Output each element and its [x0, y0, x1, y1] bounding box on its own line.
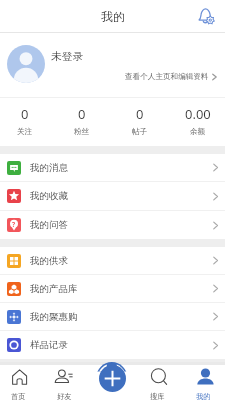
button[interactable]: Notification settings	[197, 7, 215, 25]
button[interactable]: 首页	[0, 365, 41, 400]
staticText: 0.00	[185, 105, 211, 123]
staticText: 首页	[11, 392, 26, 400]
staticText: 好友	[57, 392, 72, 400]
button[interactable]: 0	[111, 98, 169, 146]
button[interactable]: 我的聚惠购	[0, 303, 225, 330]
staticText: 样品记录	[30, 339, 68, 351]
staticText: 帖子	[132, 127, 148, 137]
staticText: 粉丝	[74, 127, 90, 137]
staticText: 我的	[196, 392, 211, 400]
button[interactable]: 我的产品库	[0, 275, 225, 302]
staticText: 我的聚惠购	[30, 311, 78, 323]
staticText: 我的产品库	[30, 283, 78, 295]
button[interactable]: 我的供求	[0, 247, 225, 274]
staticText: ?	[12, 220, 16, 229]
button[interactable]: 未登录	[0, 33, 225, 97]
button[interactable]: Add	[99, 365, 126, 392]
staticText: 关注	[17, 127, 33, 137]
staticText: 0	[78, 105, 86, 123]
staticText: 我的问答	[30, 219, 68, 231]
button[interactable]: 搜库	[135, 365, 180, 400]
staticText: 搜库	[150, 392, 165, 400]
button[interactable]: ?	[0, 211, 225, 239]
button[interactable]: 0	[53, 98, 111, 146]
staticText: 我的供求	[30, 255, 68, 267]
staticText: 我的	[101, 9, 125, 24]
button[interactable]: 样品记录	[0, 331, 225, 359]
staticText: 我的消息	[30, 162, 68, 174]
button[interactable]: 我的收藏	[0, 182, 225, 210]
button[interactable]: 0	[0, 98, 53, 146]
staticText: 查看个人主页和编辑资料	[125, 72, 209, 82]
button[interactable]: 我的	[181, 365, 225, 400]
staticText: 我的收藏	[30, 190, 68, 202]
staticText: 未登录	[51, 50, 84, 64]
button[interactable]: 好友	[42, 365, 87, 400]
button[interactable]: 我的消息	[0, 154, 225, 181]
staticText: 0	[136, 105, 144, 123]
button[interactable]: 0.00	[169, 98, 225, 146]
staticText: 余额	[190, 127, 206, 137]
staticText: 0	[21, 105, 29, 123]
